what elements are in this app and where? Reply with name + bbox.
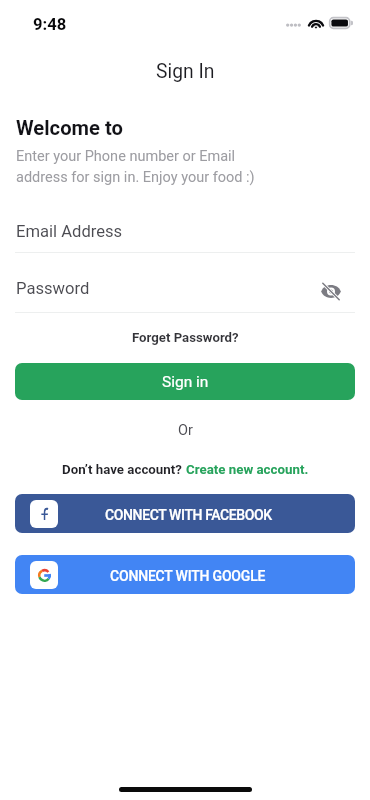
button[interactable]: Forget Password? [132, 330, 239, 345]
button[interactable]: CONNECT WITH FACEBOOK [15, 494, 355, 533]
staticText: Don’t have account? [62, 462, 186, 478]
staticText: CONNECT WITH FACEBOOK [105, 507, 272, 523]
staticText: Sign In [156, 60, 215, 83]
button[interactable]: Sign in [15, 363, 355, 400]
staticText: Sign in [162, 373, 209, 391]
staticText: Password [16, 279, 90, 298]
staticText: Enter your Phone number or Email address… [16, 148, 255, 185]
button[interactable]: CONNECT WITH GOOGLE [15, 555, 355, 594]
staticText: Email Address [16, 222, 123, 241]
staticText: 9:48 [33, 15, 67, 34]
staticText: CONNECT WITH GOOGLE [110, 568, 266, 584]
staticText: Or [178, 422, 193, 439]
button[interactable]: Show password [317, 277, 345, 305]
staticText: Welcome to [16, 116, 123, 140]
button[interactable]: Create new account. [186, 462, 309, 478]
